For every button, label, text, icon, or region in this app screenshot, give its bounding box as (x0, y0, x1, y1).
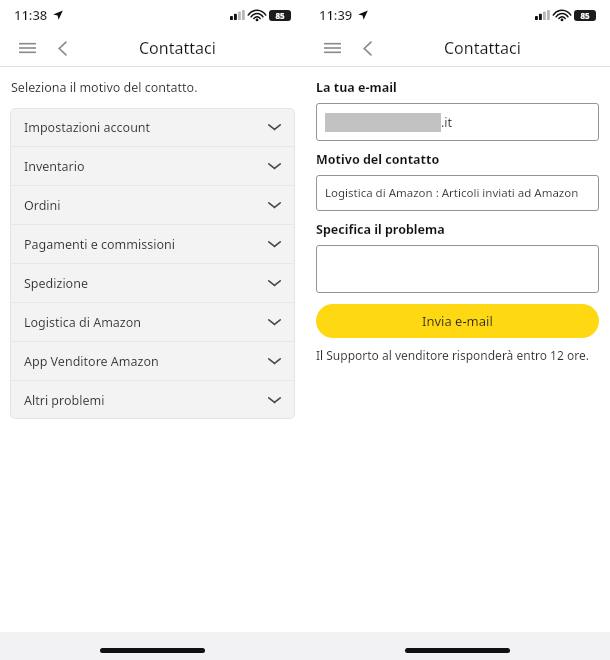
staticText: Motivo del contatto (316, 151, 440, 168)
button[interactable]: Inventario (10, 147, 295, 185)
staticText: Invia e-mail (422, 312, 493, 330)
button[interactable]: Back (351, 32, 383, 64)
button[interactable]: Menu (10, 31, 44, 65)
staticText: Logistica di Amazon (24, 314, 142, 331)
staticText: Altri problemi (24, 392, 105, 409)
staticText: Logistica di Amazon : Articoli inviati a… (325, 185, 579, 201)
staticText: 11:39 (319, 6, 353, 24)
button[interactable]: Back (46, 32, 78, 64)
button[interactable]: Pagamenti e commissioni (10, 225, 295, 263)
staticText: .it (441, 114, 453, 131)
button[interactable]: Altri problemi (10, 381, 295, 419)
button[interactable]: Ordini (10, 186, 295, 224)
staticText: Pagamenti e commissioni (24, 236, 175, 253)
button[interactable]: Impostazioni account (10, 108, 295, 146)
staticText: Specifica il problema (316, 221, 445, 238)
staticText: Ordini (24, 197, 61, 214)
button[interactable]: Invia e-mail (316, 304, 599, 338)
button[interactable]: Menu (315, 31, 349, 65)
staticText: Inventario (24, 158, 85, 175)
staticText: La tua e-mail (316, 79, 397, 96)
staticText: Impostazioni account (24, 119, 151, 136)
staticText: 85 (580, 10, 590, 21)
staticText: App Venditore Amazon (24, 353, 159, 370)
staticText: 11:38 (14, 6, 48, 24)
staticText: Seleziona il motivo del contatto. (11, 79, 198, 96)
button[interactable]: Logistica di Amazon (10, 303, 295, 341)
staticText: Contattaci (139, 37, 216, 59)
button[interactable] (316, 245, 599, 293)
staticText: Spedizione (24, 275, 88, 292)
staticText: Contattaci (444, 37, 521, 59)
staticText: Il Supporto al venditore risponderà entr… (316, 347, 589, 363)
button[interactable]: App Venditore Amazon (10, 342, 295, 380)
button[interactable]: Logistica di Amazon : Articoli inviati a… (316, 175, 599, 211)
button[interactable]: .it (316, 103, 599, 141)
button[interactable]: Spedizione (10, 264, 295, 302)
staticText: 85 (275, 10, 285, 21)
